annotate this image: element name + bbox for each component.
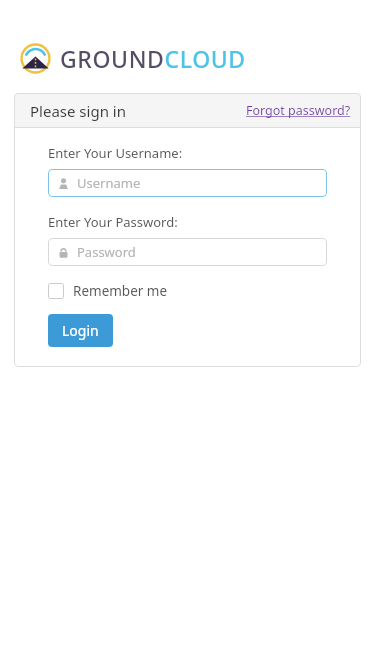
staticText: Enter Your Password: <box>48 213 178 231</box>
button[interactable]: Remember me <box>48 280 168 302</box>
staticText: Password <box>77 243 136 261</box>
button[interactable]: Username <box>48 169 327 197</box>
staticText: Forgot password? <box>246 102 351 119</box>
staticText: Remember me <box>73 282 168 300</box>
other: GroundCloud logo <box>19 42 52 75</box>
staticText: Please sign in <box>30 101 126 121</box>
staticText: Username <box>77 174 141 192</box>
button[interactable]: Login <box>48 314 113 347</box>
button[interactable]: Password <box>48 238 327 266</box>
staticText: Login <box>62 321 99 340</box>
staticText: GROUNDCLOUD <box>60 43 246 74</box>
button[interactable]: Forgot password? <box>236 96 361 125</box>
staticText: Enter Your Username: <box>48 144 183 162</box>
